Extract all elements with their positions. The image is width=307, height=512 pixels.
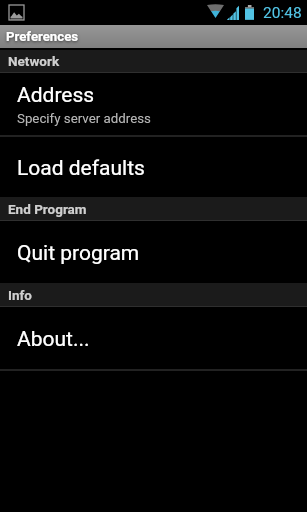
staticText: About... xyxy=(17,327,90,352)
button[interactable]: About... xyxy=(0,307,307,369)
other: Wi-Fi signal xyxy=(207,5,224,18)
button[interactable]: Quit program xyxy=(0,221,307,283)
staticText: End Program xyxy=(8,201,87,217)
staticText: Address xyxy=(17,83,95,108)
staticText: Preferences xyxy=(6,29,79,44)
button[interactable]: Load defaults xyxy=(0,137,307,197)
button[interactable]: Address xyxy=(0,73,307,135)
other: Screenshot captured notification xyxy=(9,5,24,20)
staticText: Network xyxy=(8,53,60,69)
staticText: 20:48 xyxy=(263,4,302,22)
other: Mobile signal xyxy=(227,5,239,20)
other: Battery xyxy=(245,5,254,20)
staticText: Quit program xyxy=(17,241,140,266)
staticText: Info xyxy=(8,287,32,303)
staticText: Load defaults xyxy=(17,156,145,181)
staticText: Specify server address xyxy=(17,111,151,127)
